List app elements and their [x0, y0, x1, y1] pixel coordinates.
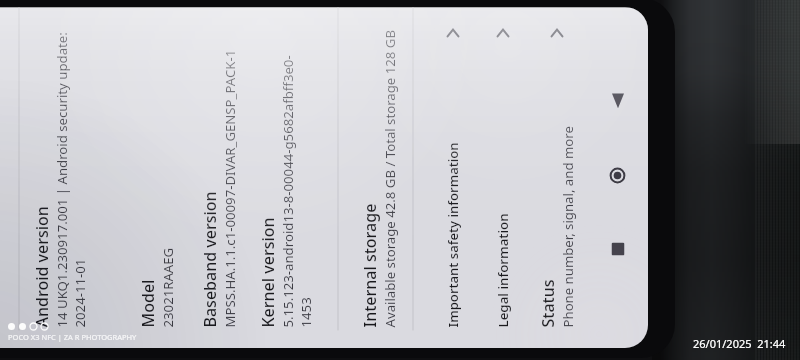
staticText: Legal information — [493, 212, 511, 327]
staticText: Available storage 42.8 GB / Total storag… — [380, 29, 398, 327]
staticText: 2024-11-01 — [70, 258, 88, 327]
staticText: Kernel version — [256, 216, 278, 327]
button[interactable]: Kernel version — [254, 7, 316, 348]
button[interactable]: Important safety information — [432, 7, 472, 348]
staticText: Android version — [30, 205, 52, 327]
staticText: Baseband version — [198, 190, 220, 327]
staticText: 23021RAAEG — [158, 247, 176, 327]
button[interactable]: Legal information — [482, 7, 522, 348]
staticText: Model — [136, 279, 158, 327]
staticText: 26/01/2025 21:44 — [693, 336, 786, 351]
other: Important safety information — [442, 23, 462, 43]
staticText: Important safety information — [443, 141, 461, 327]
button[interactable]: Home — [597, 155, 637, 195]
staticText: 14 UKQ1.230917.001 | Android security up… — [52, 31, 70, 327]
staticText: Status — [536, 278, 558, 327]
button[interactable]: Back — [597, 81, 637, 121]
button[interactable]: Baseband version — [192, 7, 244, 348]
staticText: POCO X3 NFC | ZA R PHOTOGRAPHY — [8, 332, 137, 342]
other: Legal information — [492, 23, 512, 43]
button[interactable]: Internal storage — [352, 7, 404, 348]
button[interactable]: Model — [130, 7, 182, 348]
staticText: 5.15.123-android13-8-00044-g5682afbff3e0… — [278, 16, 296, 327]
other: Status — [546, 23, 566, 43]
button[interactable]: Android version — [28, 7, 90, 348]
staticText: Internal storage — [358, 203, 380, 327]
button[interactable]: Status — [530, 7, 582, 348]
staticText: MPSS.HA.1.1.c1-00097-DIVAR_GENSP_PACK-1 — [220, 49, 238, 327]
button[interactable]: Recent apps — [597, 229, 637, 269]
staticText: Phone number, signal, and more — [558, 125, 576, 327]
staticText: 1453 — [296, 296, 314, 327]
